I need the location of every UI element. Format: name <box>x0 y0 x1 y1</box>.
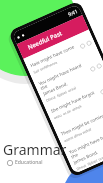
staticText: Sair enfdfnenre <box>32 59 58 75</box>
staticText: She might have forgot <box>78 152 103 172</box>
button[interactable]: You might have heard the <box>64 121 103 173</box>
button[interactable]: You might have heard the <box>33 52 103 104</box>
staticText: Educational <box>15 159 43 166</box>
staticText: Then might be coming <box>60 112 103 137</box>
staticText: James Bond. <box>42 80 69 97</box>
staticText: Needful Past <box>26 29 64 52</box>
button[interactable]: Then might be coming <box>54 98 103 150</box>
staticText: James Bond. <box>72 149 99 165</box>
button[interactable]: She might have forgot <box>43 75 103 127</box>
staticText: You might have heard the <box>37 60 88 91</box>
button[interactable]: Haie might have come <box>23 30 99 82</box>
staticText: aeau ac.kk ahhek <box>53 103 83 120</box>
staticText: 9:41 <box>67 8 79 18</box>
staticText: asene dfrea wdnd <box>63 126 92 143</box>
staticText: She might have forgot <box>50 89 96 114</box>
button[interactable]: She might have forgot <box>74 144 103 174</box>
staticText: Dheut fijdoel uraal <box>76 153 103 171</box>
staticText: Dheut fijdoel uraal <box>45 85 77 103</box>
staticText: Grammar <box>3 140 67 159</box>
staticText: You might have heard the <box>68 129 103 160</box>
staticText: Haie might have come <box>29 43 76 68</box>
